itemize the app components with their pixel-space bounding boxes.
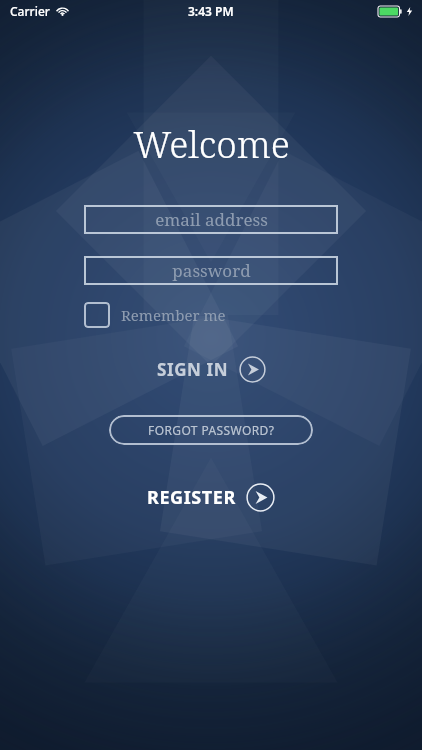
other: Sign in — [239, 356, 266, 383]
staticText: Welcome — [133, 118, 290, 168]
button[interactable]: Remember me — [84, 302, 338, 328]
staticText: Remember me — [121, 305, 226, 325]
staticText: REGISTER — [147, 485, 236, 510]
staticText: 3:43 PM — [188, 3, 234, 19]
button[interactable]: password — [84, 256, 338, 285]
staticText: email address — [155, 208, 268, 231]
button[interactable]: FORGOT PASSWORD? — [109, 415, 313, 445]
staticText: Carrier — [10, 3, 50, 19]
button[interactable]: REGISTER — [141, 479, 281, 516]
staticText: password — [172, 259, 251, 282]
button[interactable]: email address — [84, 205, 338, 234]
staticText: FORGOT PASSWORD? — [148, 422, 275, 438]
other: Register — [246, 483, 275, 512]
staticText: SIGN IN — [157, 358, 229, 381]
button[interactable]: SIGN IN — [151, 352, 272, 387]
